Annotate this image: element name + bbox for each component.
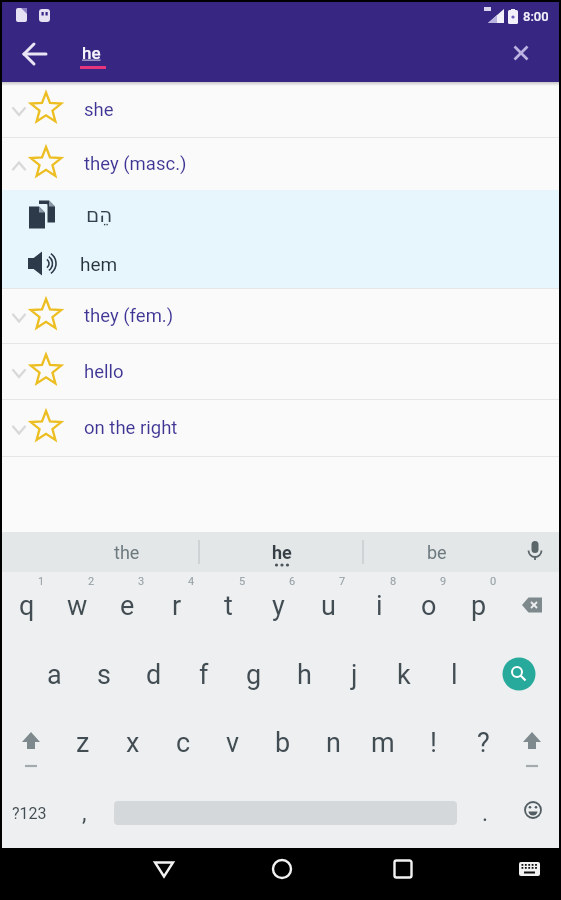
staticText: hem (80, 253, 118, 275)
staticText: they (masc.) (84, 153, 187, 175)
button[interactable]: w (52, 580, 102, 632)
staticText: t (224, 590, 233, 622)
staticText: 4 (188, 575, 195, 588)
staticText: 5 (239, 575, 246, 588)
staticText: b (275, 727, 291, 759)
staticText: j (351, 659, 358, 691)
button[interactable]: u (303, 580, 353, 632)
staticText: w (67, 590, 88, 622)
button[interactable]: v (208, 717, 258, 769)
button[interactable]: . (460, 787, 510, 839)
staticText: hello (84, 361, 124, 383)
button[interactable]: t (203, 580, 253, 632)
staticText: 9 (440, 575, 447, 588)
button[interactable] (6, 717, 56, 769)
staticText: they (fem.) (84, 305, 174, 327)
staticText: ?123 (12, 804, 47, 823)
button[interactable]: hello (2, 344, 559, 399)
button[interactable]: ? (458, 717, 508, 769)
staticText: p (471, 590, 487, 622)
staticText: ? (477, 727, 490, 759)
button[interactable] (507, 40, 539, 72)
button[interactable]: d (129, 649, 179, 701)
button[interactable] (504, 848, 554, 898)
staticText: . (482, 800, 489, 827)
staticText: 8:00 (523, 9, 549, 24)
staticText: f (199, 659, 209, 691)
button[interactable] (378, 848, 428, 898)
staticText: z (76, 727, 90, 759)
staticText: he (82, 43, 101, 63)
button[interactable] (257, 848, 307, 898)
staticText: k (397, 659, 411, 691)
button[interactable]: k (379, 649, 429, 701)
button[interactable]: a (29, 649, 79, 701)
staticText: 0 (490, 575, 497, 588)
staticText: y (272, 590, 285, 622)
staticText: , (82, 800, 87, 827)
staticText: l (451, 659, 458, 691)
button[interactable] (507, 717, 557, 769)
button[interactable] (2, 30, 54, 82)
button[interactable]: n (308, 717, 358, 769)
button[interactable]: q (2, 580, 52, 632)
staticText: r (172, 590, 182, 622)
button[interactable]: r (152, 580, 202, 632)
button[interactable]: the (87, 532, 167, 572)
button[interactable]: they (fem.) (2, 289, 559, 343)
button[interactable]: she (2, 82, 559, 137)
button[interactable]: j (329, 649, 379, 701)
staticText: i (376, 590, 383, 622)
button[interactable]: b (258, 717, 308, 769)
button[interactable]: h (279, 649, 329, 701)
button[interactable]: p (454, 580, 504, 632)
button[interactable]: they (masc.) (2, 138, 559, 190)
button[interactable]: y (253, 580, 303, 632)
button[interactable]: x (108, 717, 158, 769)
button[interactable] (507, 787, 557, 839)
staticText: u (321, 590, 336, 622)
button[interactable]: ?123 (4, 787, 54, 839)
staticText: v (226, 727, 240, 759)
staticText: 8 (390, 575, 397, 588)
button[interactable]: z (58, 717, 108, 769)
staticText: e (120, 590, 135, 622)
button[interactable]: s (79, 649, 129, 701)
button[interactable]: f (179, 649, 229, 701)
button[interactable]: be (397, 532, 477, 572)
button[interactable]: g (229, 649, 279, 701)
button[interactable]: he (242, 532, 322, 572)
staticText: h (297, 659, 312, 691)
button[interactable]: o (404, 580, 454, 632)
button[interactable]: e (102, 580, 152, 632)
button[interactable]: c (158, 717, 208, 769)
button[interactable] (139, 848, 189, 898)
staticText: x (126, 727, 140, 759)
staticText: s (97, 659, 111, 691)
staticText: d (146, 659, 162, 691)
staticText: ! (430, 727, 437, 759)
button[interactable] (493, 649, 545, 701)
button[interactable]: on the right (2, 400, 559, 456)
staticText: be (427, 542, 447, 563)
staticText: o (421, 590, 437, 622)
button[interactable]: הֵם (2, 190, 559, 239)
staticText: g (246, 659, 262, 691)
button[interactable]: l (429, 649, 479, 701)
button[interactable]: ! (408, 717, 458, 769)
staticText: 6 (289, 575, 296, 588)
staticText: n (326, 727, 341, 759)
staticText: 7 (339, 575, 346, 588)
staticText: the (114, 542, 140, 563)
staticText: on the right (84, 417, 178, 439)
staticText: q (19, 590, 35, 622)
button[interactable]: hem (2, 239, 559, 288)
staticText: 3 (138, 575, 145, 588)
button[interactable]: he (80, 30, 200, 82)
button[interactable]: i (354, 580, 404, 632)
button[interactable]: m (358, 717, 408, 769)
staticText: הֵם (86, 203, 113, 226)
button[interactable]: , (59, 787, 109, 839)
button[interactable] (508, 580, 560, 632)
